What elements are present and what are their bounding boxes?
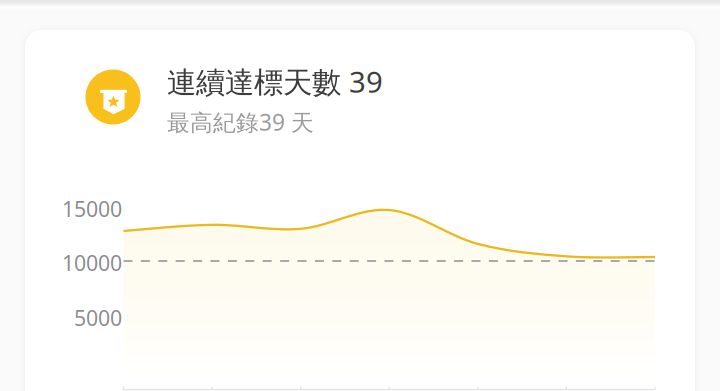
button[interactable]: 連續達標天數 39 bbox=[22, 27, 698, 391]
staticText: 最高紀錄39 天 bbox=[167, 107, 314, 137]
staticText: 5000 bbox=[74, 303, 122, 332]
staticText: 15000 bbox=[62, 194, 122, 223]
staticText: 10000 bbox=[62, 248, 122, 277]
staticText: 連續達標天數 39 bbox=[167, 62, 383, 101]
